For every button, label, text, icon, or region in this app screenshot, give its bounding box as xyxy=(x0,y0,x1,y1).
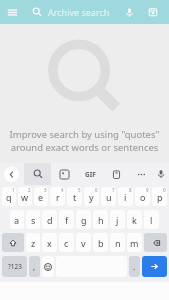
button[interactable]: o xyxy=(135,187,150,206)
staticText: m xyxy=(130,237,139,249)
button[interactable]: c xyxy=(59,233,74,252)
staticText: w xyxy=(21,191,29,203)
staticText: 4 xyxy=(61,187,64,193)
staticText: h xyxy=(98,214,104,226)
button[interactable]: j xyxy=(110,210,125,229)
button[interactable]: z xyxy=(26,233,40,252)
button[interactable]: m xyxy=(127,233,142,252)
staticText: . xyxy=(133,261,136,272)
button[interactable]: r xyxy=(50,187,65,206)
staticText: 0 xyxy=(163,187,166,193)
button[interactable]: a xyxy=(10,210,24,229)
staticText: x xyxy=(47,237,52,249)
button[interactable]: l xyxy=(144,210,159,229)
staticText: p xyxy=(157,191,163,203)
button[interactable]: v xyxy=(76,233,91,252)
button[interactable]: y xyxy=(84,187,99,206)
button[interactable]: Menu xyxy=(0,0,24,24)
staticText: y xyxy=(89,191,94,203)
button[interactable]: Voice search xyxy=(118,1,140,23)
button[interactable]: t xyxy=(67,187,82,206)
staticText: i xyxy=(124,191,127,203)
staticText: 8 xyxy=(129,187,132,193)
button[interactable]: Calendar xyxy=(142,1,164,23)
button[interactable]: , xyxy=(29,256,40,277)
button[interactable]: Voice input xyxy=(153,163,169,185)
button[interactable]: u xyxy=(101,187,116,206)
staticText: e xyxy=(38,191,44,203)
staticText: c xyxy=(64,237,69,249)
staticText: n xyxy=(115,237,121,249)
button[interactable]: n xyxy=(110,233,125,252)
staticText: z xyxy=(31,237,36,249)
button[interactable]: k xyxy=(127,210,142,229)
staticText: , xyxy=(33,261,36,272)
staticText: ?123 xyxy=(8,262,22,271)
button[interactable]: x xyxy=(42,233,57,252)
staticText: a xyxy=(14,214,20,226)
staticText: r xyxy=(56,191,60,203)
button[interactable]: i xyxy=(118,187,133,206)
staticText: s xyxy=(31,214,36,226)
staticText: Archive search xyxy=(48,6,118,18)
button[interactable]: Emoji xyxy=(42,256,54,277)
button[interactable]: Search xyxy=(24,163,51,185)
button[interactable]: q xyxy=(2,187,16,206)
button[interactable]: Enter xyxy=(142,256,167,277)
staticText: 2 xyxy=(28,187,31,193)
staticText: v xyxy=(81,237,86,249)
staticText: Improve search by using "quotes" around … xyxy=(0,128,169,154)
button[interactable]: h xyxy=(93,210,108,229)
staticText: t xyxy=(73,191,77,203)
button[interactable]: Backspace xyxy=(144,233,167,252)
staticText: GIF xyxy=(85,170,96,179)
button[interactable]: Back xyxy=(4,167,19,182)
staticText: f xyxy=(65,214,69,226)
button[interactable]: w xyxy=(18,187,32,206)
staticText: l xyxy=(150,214,153,226)
button[interactable]: GIF xyxy=(77,163,103,185)
staticText: 1 xyxy=(12,187,15,193)
button[interactable]: e xyxy=(34,187,48,206)
button[interactable]: Stickers xyxy=(51,163,77,185)
staticText: o xyxy=(140,191,146,203)
staticText: 9 xyxy=(146,187,149,193)
staticText: b xyxy=(98,237,104,249)
button[interactable]: Shift xyxy=(2,233,24,252)
staticText: 3 xyxy=(44,187,47,193)
button[interactable]: g xyxy=(76,210,91,229)
staticText: u xyxy=(106,191,112,203)
staticText: j xyxy=(116,214,119,226)
button[interactable]: p xyxy=(152,187,167,206)
staticText: 6 xyxy=(95,187,98,193)
button[interactable]: Clipboard xyxy=(103,163,129,185)
button[interactable]: s xyxy=(26,210,40,229)
button[interactable]: d xyxy=(42,210,57,229)
staticText: g xyxy=(81,214,87,226)
staticText: q xyxy=(6,191,12,203)
button[interactable]: More options xyxy=(129,163,153,185)
staticText: 7 xyxy=(112,187,115,193)
button[interactable]: ?123 xyxy=(2,256,27,277)
button[interactable]: . xyxy=(129,256,140,277)
staticText: k xyxy=(132,214,137,226)
button[interactable]: f xyxy=(59,210,74,229)
button[interactable]: b xyxy=(93,233,108,252)
staticText: d xyxy=(47,214,53,226)
staticText: 5 xyxy=(78,187,81,193)
